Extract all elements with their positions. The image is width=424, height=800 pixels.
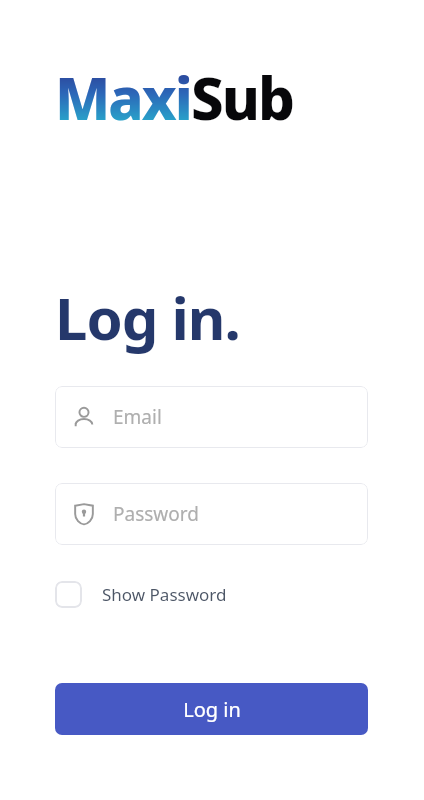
- button[interactable]: Log in: [55, 683, 368, 735]
- staticText: Email: [113, 404, 162, 430]
- staticText: Sub: [191, 58, 293, 130]
- staticText: Log in: [183, 696, 241, 723]
- button[interactable]: Password: [55, 483, 368, 545]
- staticText: Show Password: [102, 583, 227, 606]
- button[interactable]: Show Password: [55, 575, 227, 613]
- staticText: Maxi: [55, 58, 191, 130]
- staticText: Log in.: [55, 278, 240, 357]
- staticText: Password: [113, 501, 199, 527]
- button[interactable]: Email: [55, 386, 368, 448]
